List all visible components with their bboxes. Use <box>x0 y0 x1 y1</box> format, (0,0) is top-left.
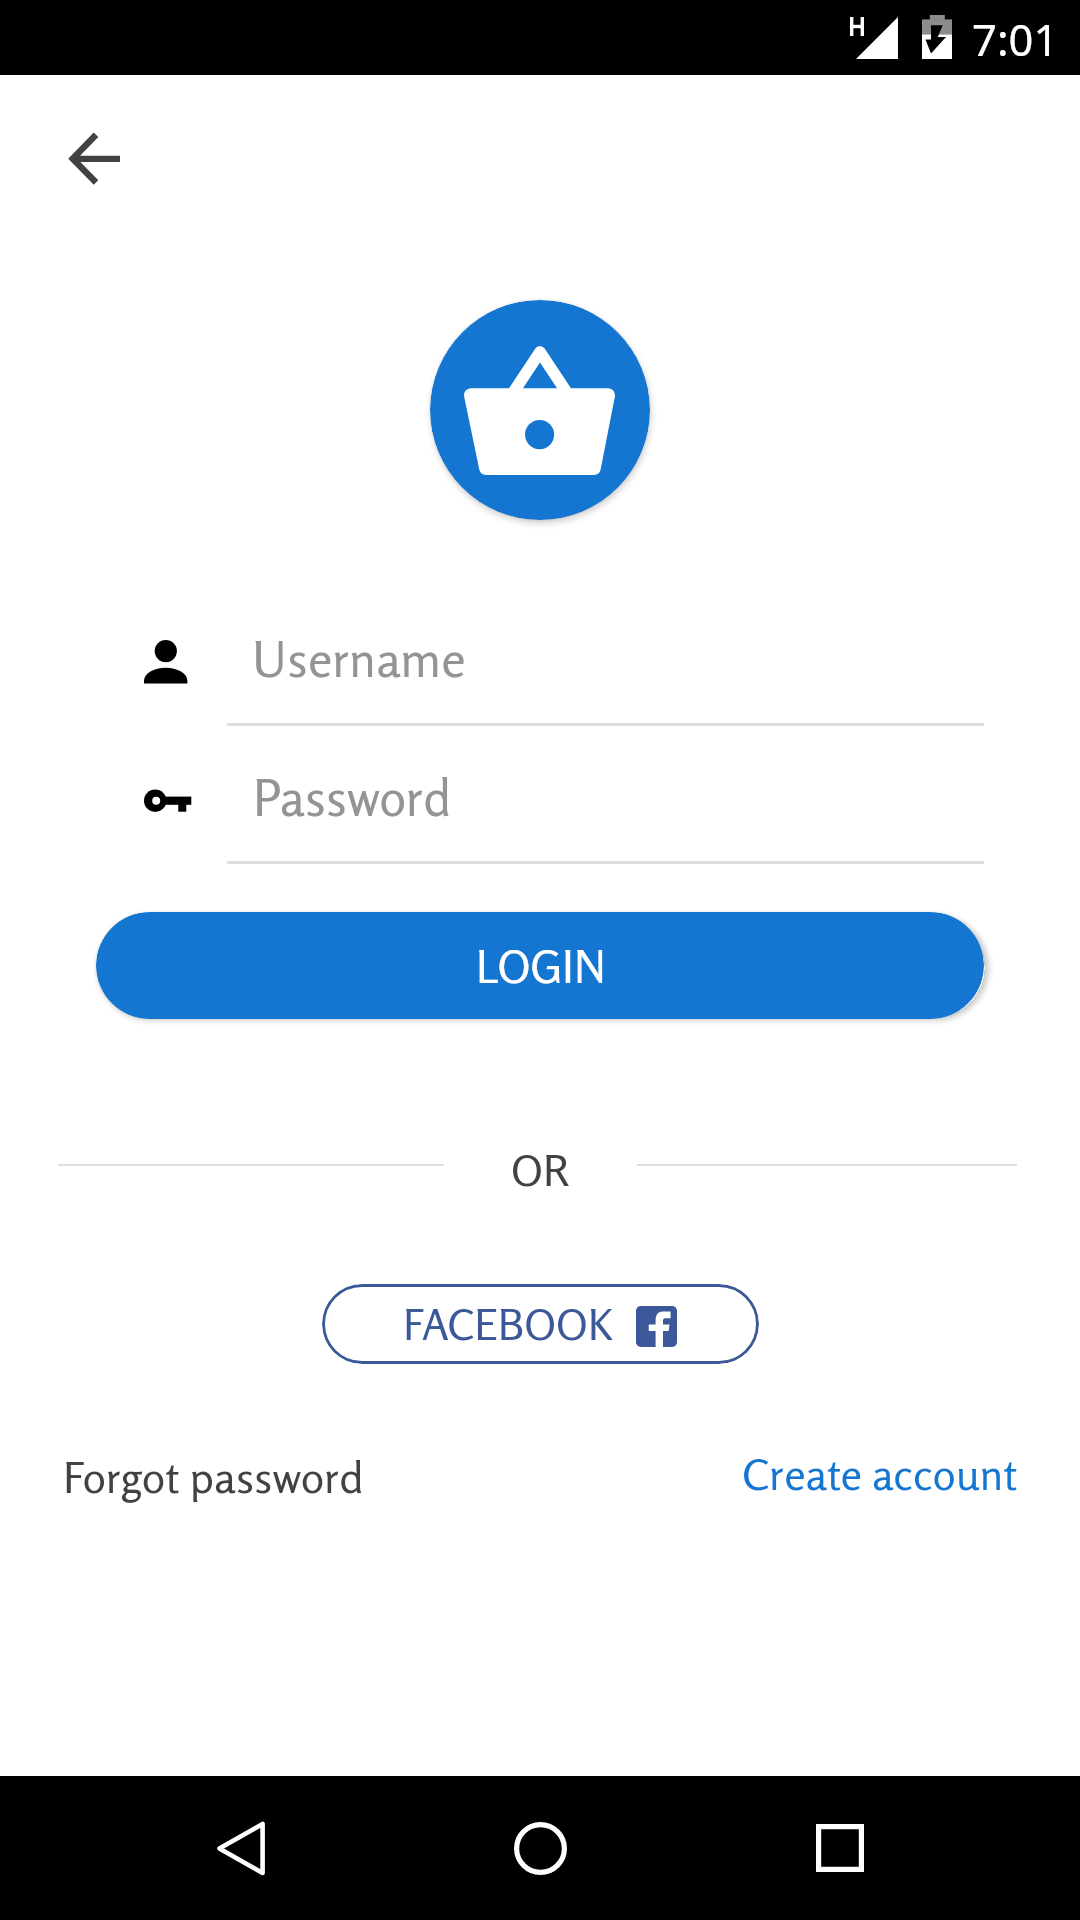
staticText: Password <box>253 767 452 828</box>
staticText: FACEBOOK <box>403 1298 613 1350</box>
staticText: OR <box>511 1144 569 1196</box>
button[interactable]: Create account <box>742 1448 1018 1510</box>
button[interactable]: Forgot password <box>63 1450 373 1512</box>
button[interactable]: Recents <box>786 1794 894 1902</box>
staticText: Forgot password <box>63 1450 364 1503</box>
button[interactable]: LOGIN <box>96 912 984 1019</box>
staticText: Create account <box>742 1448 1018 1501</box>
button[interactable]: Password <box>227 737 984 863</box>
button[interactable]: Back <box>186 1794 294 1902</box>
staticText: LOGIN <box>476 939 606 993</box>
button[interactable]: FACEBOOK <box>322 1284 759 1364</box>
button[interactable]: Username <box>227 600 984 726</box>
button[interactable]: Back <box>30 92 162 224</box>
staticText: 7:01 <box>972 9 1059 68</box>
button[interactable]: Home <box>486 1794 594 1902</box>
staticText: Username <box>252 629 466 689</box>
